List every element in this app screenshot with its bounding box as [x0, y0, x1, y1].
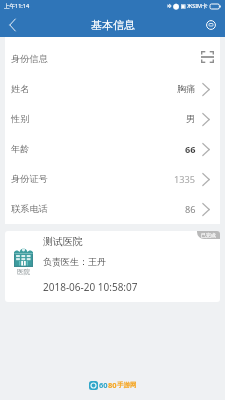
staticText: 身份信息 — [11, 53, 48, 65]
staticText: 60 — [99, 380, 108, 390]
button[interactable]: Scan QR code — [201, 51, 214, 63]
staticText: 男 — [186, 113, 196, 125]
staticText: 86 — [185, 203, 196, 216]
staticText: 2018-06-20 10:58:07 — [43, 280, 138, 294]
button[interactable]: 姓名 — [5, 74, 220, 104]
staticText: 手游网 — [117, 381, 137, 389]
staticText: 医院 — [17, 268, 30, 276]
button[interactable]: 性别 — [5, 104, 220, 134]
staticText: 胸痛 — [177, 83, 196, 95]
button[interactable]: Messages — [196, 12, 225, 37]
staticText: 66 — [185, 143, 196, 156]
button[interactable]: 联系电话 — [5, 194, 220, 224]
button[interactable]: 身份证号 — [5, 164, 220, 194]
staticText: 负责医生：王丹 — [43, 256, 106, 267]
staticText: 身份证号 — [11, 173, 48, 185]
button[interactable]: 年龄 — [5, 134, 220, 164]
staticText: 联系电话 — [11, 203, 48, 215]
button[interactable]: 已完成 — [5, 231, 220, 302]
staticText: 上午11:14 — [4, 2, 30, 10]
staticText: ✲ ⬤ ▣ ЖSIM卡 — [167, 2, 208, 10]
staticText: 测试医院 — [43, 235, 83, 248]
staticText: 性别 — [11, 113, 30, 125]
staticText: 年龄 — [11, 143, 30, 155]
staticText: 80 — [108, 380, 117, 390]
staticText: 1335 — [174, 173, 196, 186]
staticText: 已完成 — [201, 232, 216, 238]
button[interactable]: Back — [0, 12, 24, 37]
staticText: 基本信息 — [91, 18, 135, 32]
staticText: 姓名 — [11, 83, 30, 95]
